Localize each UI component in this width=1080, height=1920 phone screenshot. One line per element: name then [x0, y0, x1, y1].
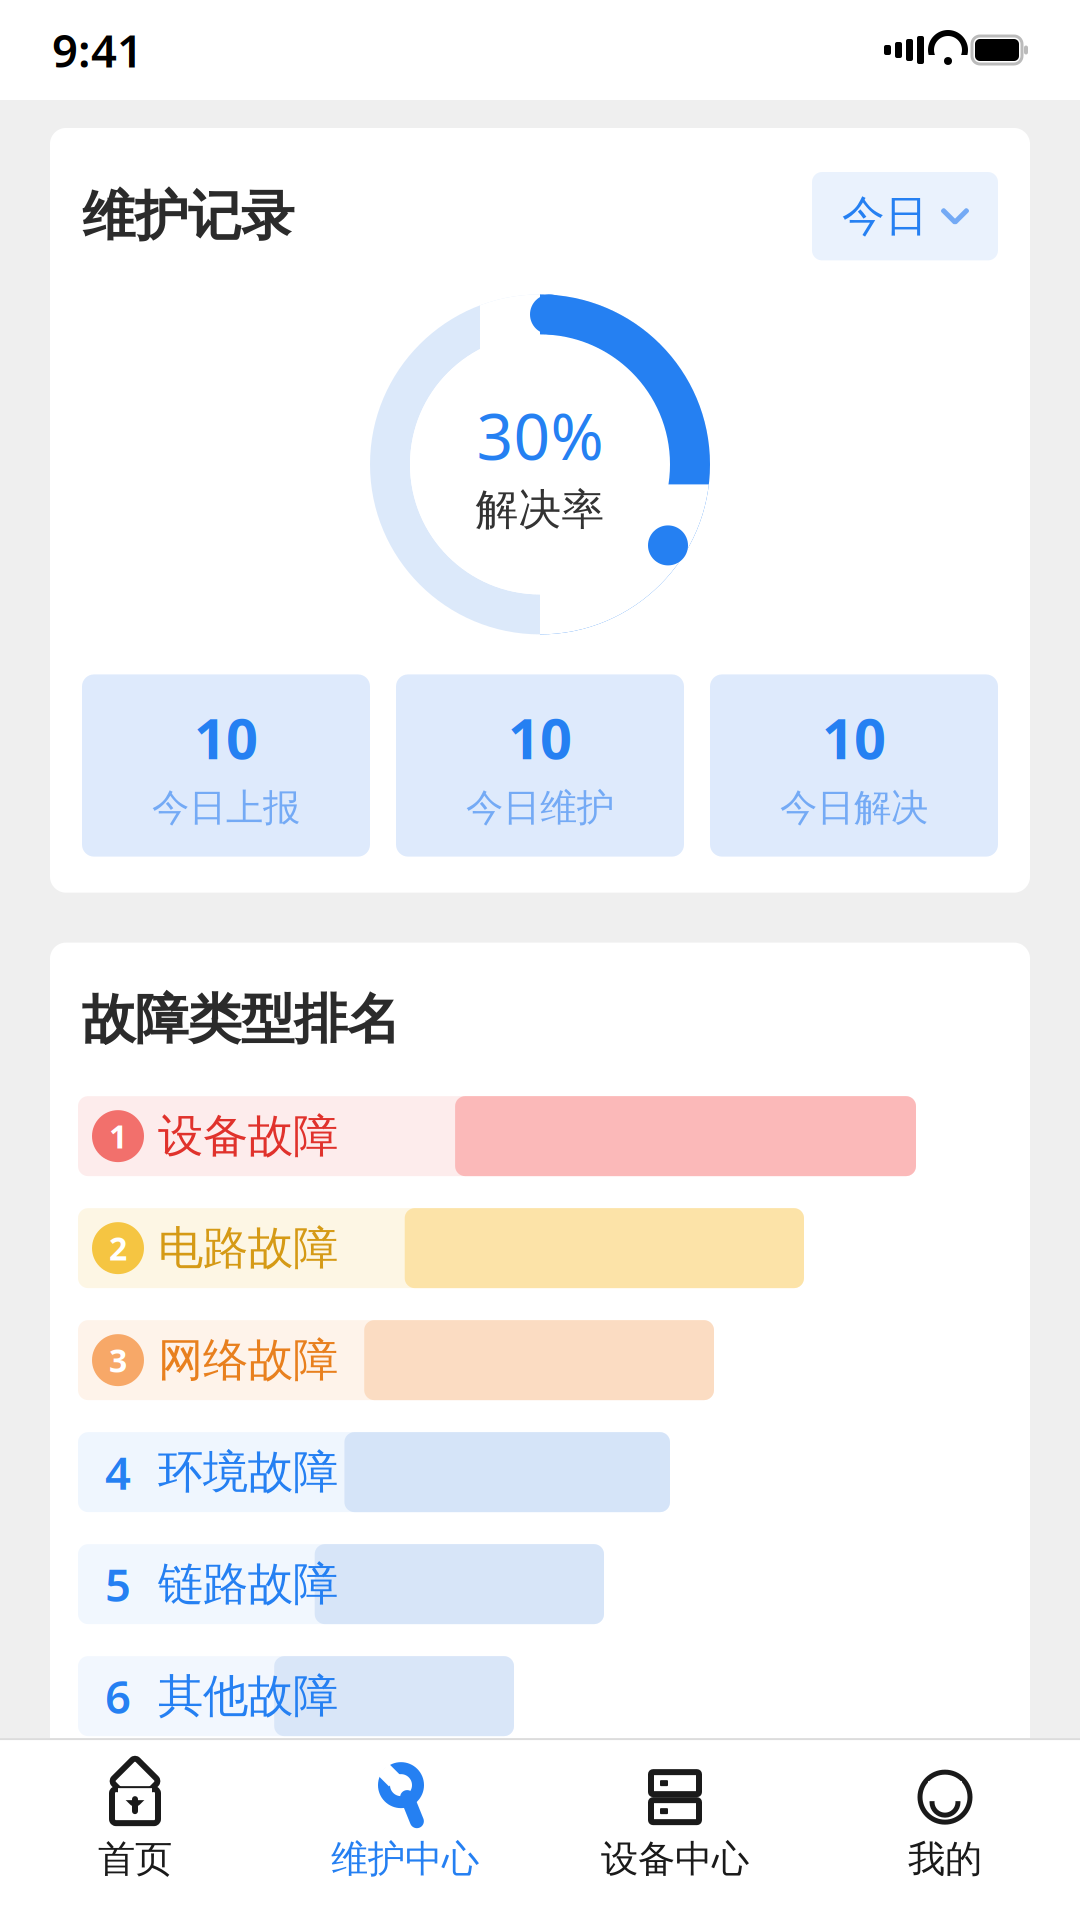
staticText: 4 — [105, 1442, 131, 1502]
staticText: 10 — [822, 700, 886, 775]
staticText: 今日 — [842, 190, 928, 242]
button[interactable]: 3 — [78, 1320, 1030, 1400]
button[interactable]: 设备中心 — [540, 1758, 810, 1894]
staticText: 链路故障 — [158, 1556, 338, 1612]
button[interactable]: 2 — [78, 1208, 1030, 1288]
staticText: 今日解决 — [780, 785, 928, 831]
staticText: 故障类型排名 — [82, 987, 400, 1052]
button[interactable]: 1 — [78, 1096, 1030, 1176]
button[interactable]: 10 — [82, 674, 370, 857]
staticText: 今日上报 — [152, 785, 300, 831]
button[interactable]: 10 — [710, 674, 998, 857]
staticText: 解决率 — [475, 484, 604, 536]
staticText: 9:41 — [52, 20, 143, 80]
button[interactable]: 今日 — [812, 172, 998, 260]
staticText: 设备中心 — [601, 1836, 749, 1882]
staticText: 30% — [476, 393, 603, 478]
staticText: 环境故障 — [158, 1444, 338, 1500]
button[interactable]: 维护中心 — [270, 1758, 540, 1894]
staticText: 10 — [194, 700, 258, 775]
button[interactable]: 5 — [78, 1544, 1030, 1624]
staticText: 首页 — [98, 1836, 172, 1882]
staticText: 我的 — [908, 1836, 982, 1882]
staticText: 网络故障 — [158, 1332, 338, 1388]
staticText: 2 — [109, 1227, 127, 1269]
staticText: 1 — [109, 1115, 127, 1157]
button[interactable]: 首页 — [0, 1758, 270, 1894]
staticText: 设备故障 — [158, 1108, 338, 1164]
staticText: 维护中心 — [331, 1836, 479, 1882]
button[interactable]: 6 — [78, 1656, 1030, 1736]
staticText: 5 — [105, 1554, 131, 1614]
staticText: 10 — [508, 700, 572, 775]
staticText: 3 — [109, 1339, 127, 1381]
staticText: 6 — [105, 1666, 131, 1726]
button[interactable]: 我的 — [810, 1758, 1080, 1894]
staticText: 维护记录 — [82, 183, 294, 249]
staticText: 电路故障 — [158, 1220, 338, 1276]
staticText: 今日维护 — [466, 785, 614, 831]
staticText: 其他故障 — [158, 1668, 338, 1724]
button[interactable]: 4 — [78, 1432, 1030, 1512]
button[interactable]: 10 — [396, 674, 684, 857]
